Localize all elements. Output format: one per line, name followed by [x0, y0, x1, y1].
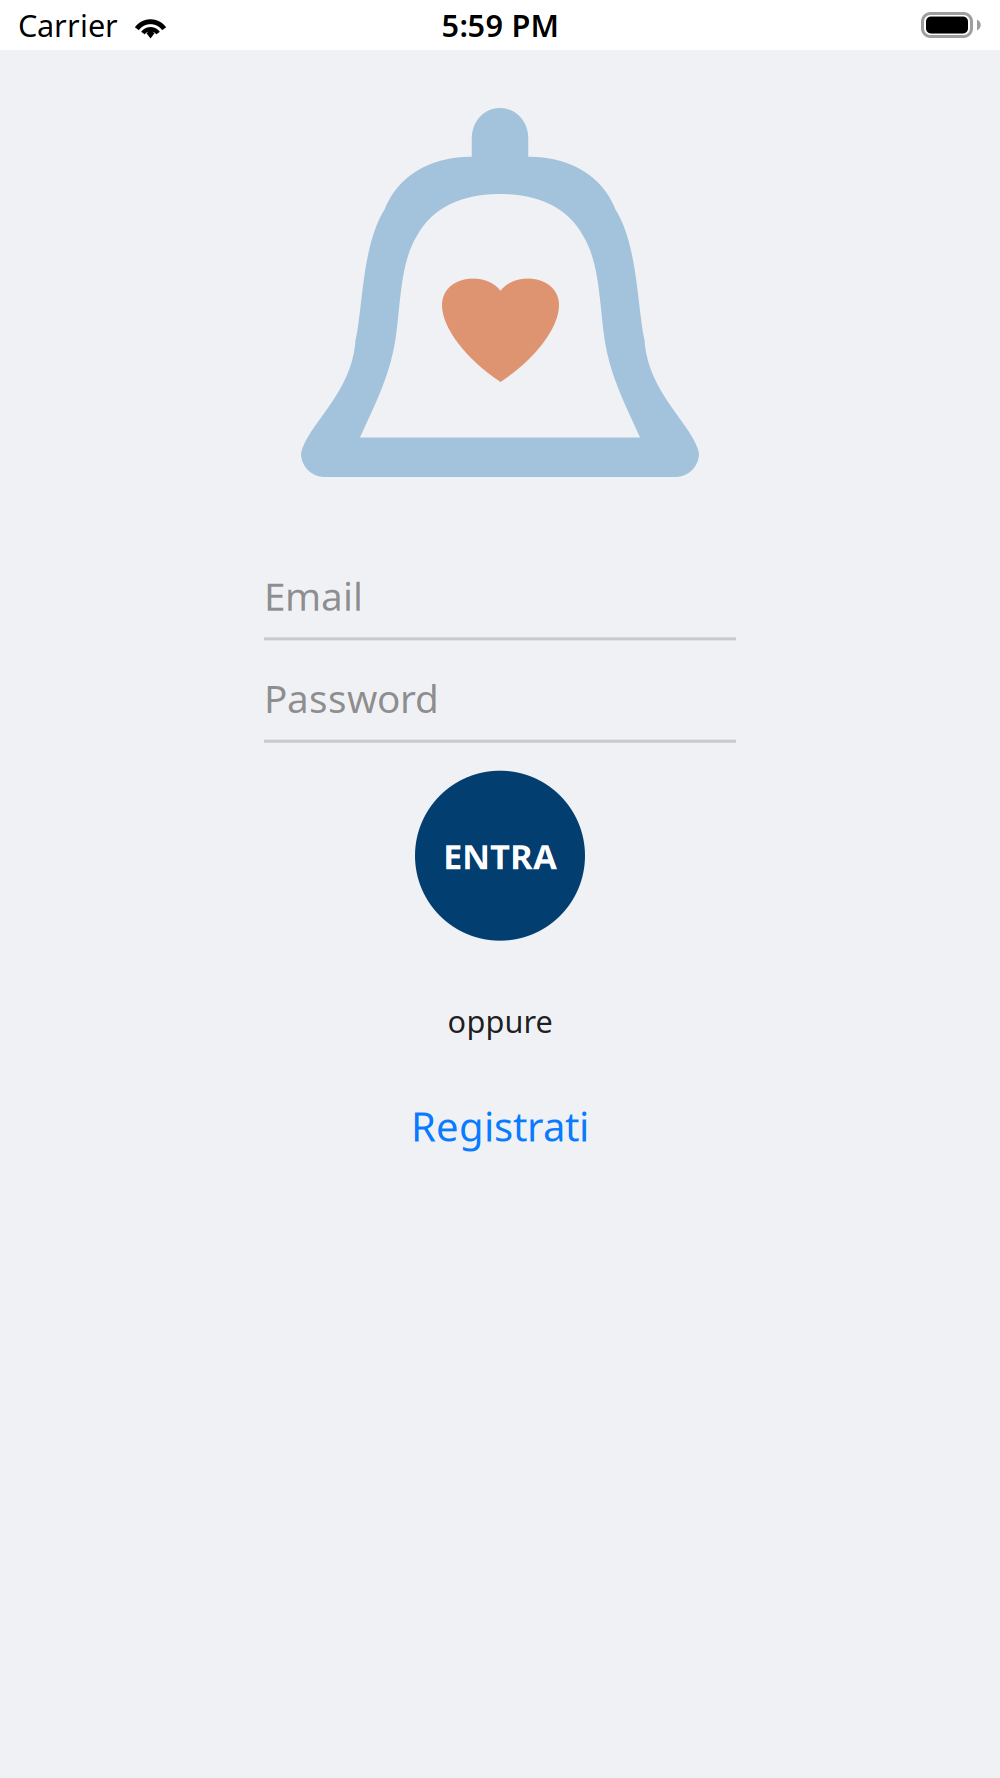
- staticText: oppure: [447, 1001, 552, 1041]
- button[interactable]: Registrati: [411, 1099, 589, 1152]
- button[interactable]: Password: [264, 672, 736, 743]
- staticText: Email: [264, 570, 363, 621]
- button[interactable]: Email: [264, 570, 736, 640]
- staticText: Registrati: [411, 1099, 589, 1152]
- staticText: 5:59 PM: [441, 5, 558, 45]
- staticText: Password: [264, 672, 439, 724]
- staticText: ENTRA: [443, 833, 557, 879]
- staticText: Carrier: [18, 5, 118, 45]
- button[interactable]: ENTRA: [415, 771, 585, 941]
